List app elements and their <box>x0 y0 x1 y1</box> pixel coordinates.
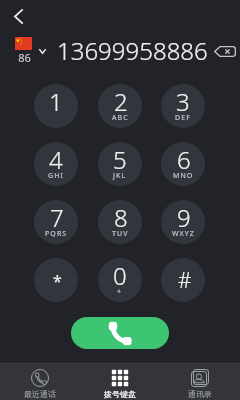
staticText: + <box>117 287 123 297</box>
staticText: 5 <box>113 143 127 176</box>
button[interactable]: Country code 86 <box>10 33 52 65</box>
button[interactable]: 6 <box>161 142 205 186</box>
staticText: 2 <box>114 85 128 118</box>
staticText: 1 <box>49 85 63 118</box>
button[interactable]: 最近通话 <box>0 364 80 400</box>
button[interactable]: 4 <box>34 142 78 186</box>
staticText: JKL <box>113 171 127 181</box>
staticText: 最近通话 <box>24 389 56 399</box>
staticText: ABC <box>112 113 129 123</box>
staticText: 0 <box>113 259 127 292</box>
button[interactable]: 1 <box>34 84 78 128</box>
staticText: GHI <box>48 171 64 181</box>
button[interactable]: 通讯录 <box>160 364 240 400</box>
button[interactable]: * <box>34 258 78 302</box>
staticText: 86 <box>15 50 34 65</box>
button[interactable]: Back <box>4 2 32 30</box>
staticText: PQRS <box>45 229 68 239</box>
button[interactable]: 7 <box>34 200 78 244</box>
staticText: 8 <box>114 201 128 234</box>
button[interactable]: Call <box>71 317 169 349</box>
button[interactable]: 9 <box>161 200 205 244</box>
staticText: TUV <box>112 229 129 239</box>
button[interactable]: 8 <box>98 200 142 244</box>
button[interactable]: 拨号键盘 <box>80 364 160 400</box>
staticText: * <box>53 270 62 292</box>
staticText: WXYZ <box>172 229 195 239</box>
button[interactable]: 5 <box>98 142 142 186</box>
staticText: 拨号键盘 <box>104 389 136 399</box>
button[interactable]: 2 <box>98 84 142 128</box>
staticText: 通讯录 <box>188 389 212 399</box>
staticText: DEF <box>175 113 191 123</box>
staticText: 6 <box>177 143 191 176</box>
staticText: 3 <box>176 85 190 118</box>
staticText: # <box>178 266 192 295</box>
staticText: 4 <box>49 143 63 176</box>
staticText: 13699958886 <box>57 34 208 67</box>
staticText: 7 <box>50 201 64 234</box>
button[interactable]: # <box>161 258 205 302</box>
button[interactable]: 0 <box>98 258 142 302</box>
button[interactable]: 3 <box>161 84 205 128</box>
staticText: 9 <box>177 201 191 234</box>
staticText: MNO <box>173 171 194 181</box>
button[interactable]: Delete <box>211 38 237 64</box>
